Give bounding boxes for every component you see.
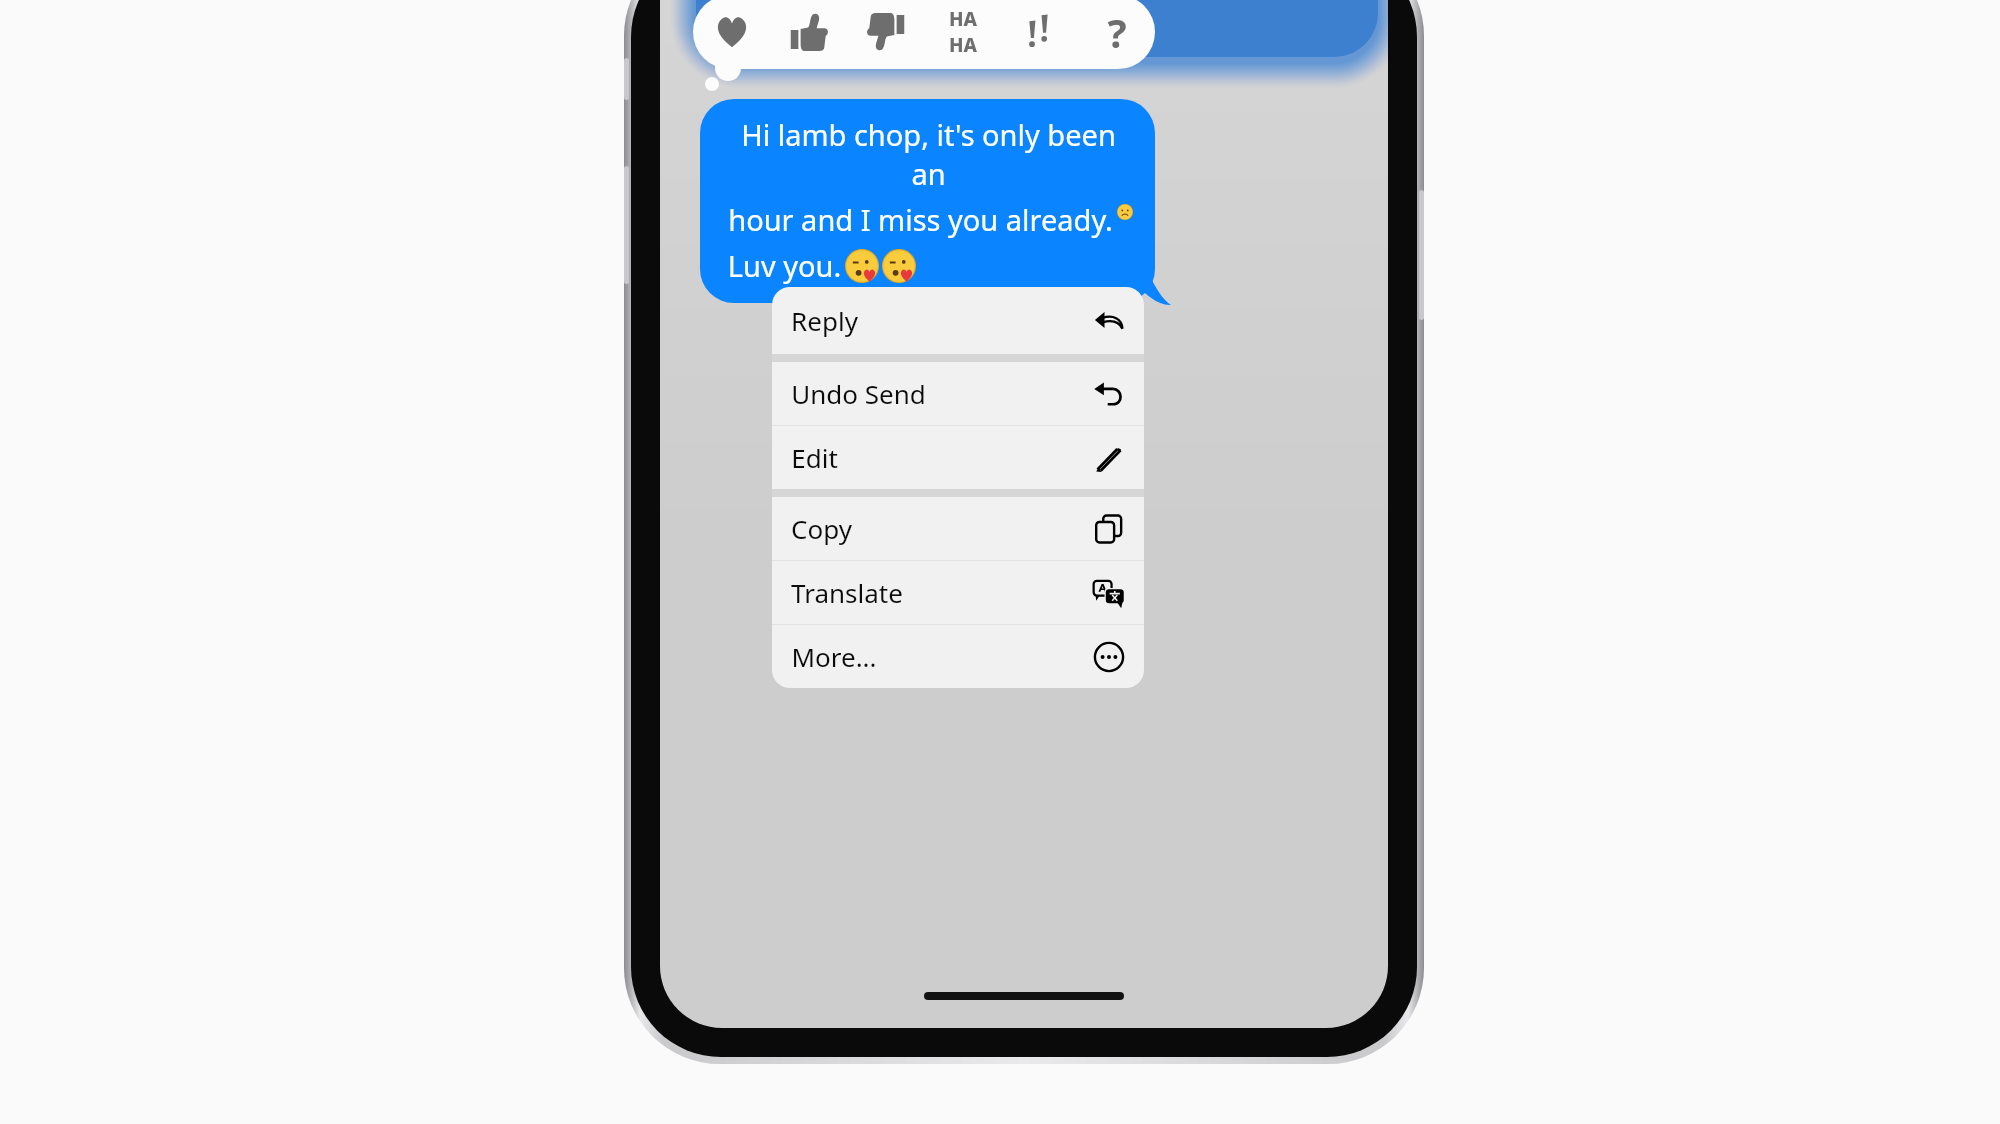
button[interactable]: More...: [772, 625, 1144, 688]
button[interactable]: Translate: [772, 561, 1144, 624]
staticText: hour and I miss you already.: [724, 200, 1117, 239]
button[interactable]: Love: [693, 0, 770, 69]
staticText: Edit: [791, 440, 838, 475]
button[interactable]: Exclamation: [1001, 0, 1078, 69]
staticText: Undo Send: [791, 376, 926, 411]
button[interactable]: Dislike: [847, 0, 924, 69]
staticText: Luv you.: [724, 246, 845, 285]
staticText: HA: [949, 6, 977, 32]
button[interactable]: Question: [1078, 0, 1155, 69]
staticText: Hi lamb chop, it's only been an: [724, 115, 1133, 193]
button[interactable]: Hi lamb chop, it's only been an: [700, 99, 1155, 303]
staticText: Reply: [791, 303, 858, 338]
button[interactable]: Undo Send: [772, 362, 1144, 425]
button[interactable]: Reply: [772, 287, 1144, 354]
staticText: More...: [791, 639, 877, 674]
staticText: HA: [949, 32, 977, 58]
staticText: ?: [1107, 5, 1127, 59]
staticText: Translate: [791, 575, 903, 610]
button[interactable]: Like: [770, 0, 847, 69]
button[interactable]: Haha: [924, 0, 1001, 69]
button[interactable]: Copy: [772, 497, 1144, 560]
staticText: Copy: [791, 511, 852, 546]
button[interactable]: Edit: [772, 426, 1144, 489]
